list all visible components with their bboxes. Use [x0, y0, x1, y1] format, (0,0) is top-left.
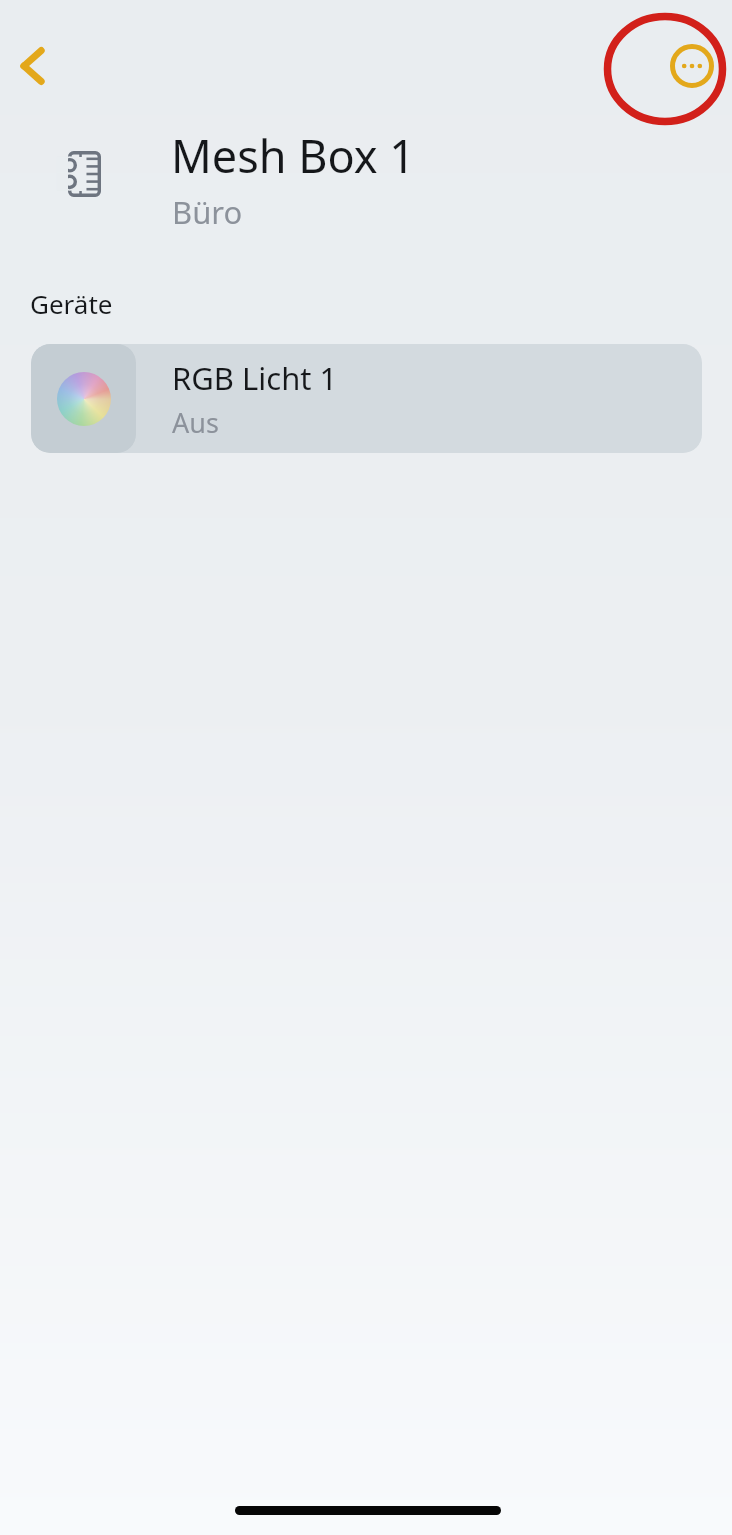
- staticText: RGB Licht 1: [172, 357, 338, 399]
- staticText: Mesh Box 1: [171, 125, 416, 186]
- button[interactable]: Back: [0, 28, 72, 104]
- staticText: Aus: [172, 404, 219, 441]
- button[interactable]: More options: [670, 44, 714, 88]
- staticText: Büro: [172, 191, 243, 233]
- staticText: Geräte: [30, 286, 113, 321]
- button[interactable]: RGB Licht 1: [31, 344, 702, 453]
